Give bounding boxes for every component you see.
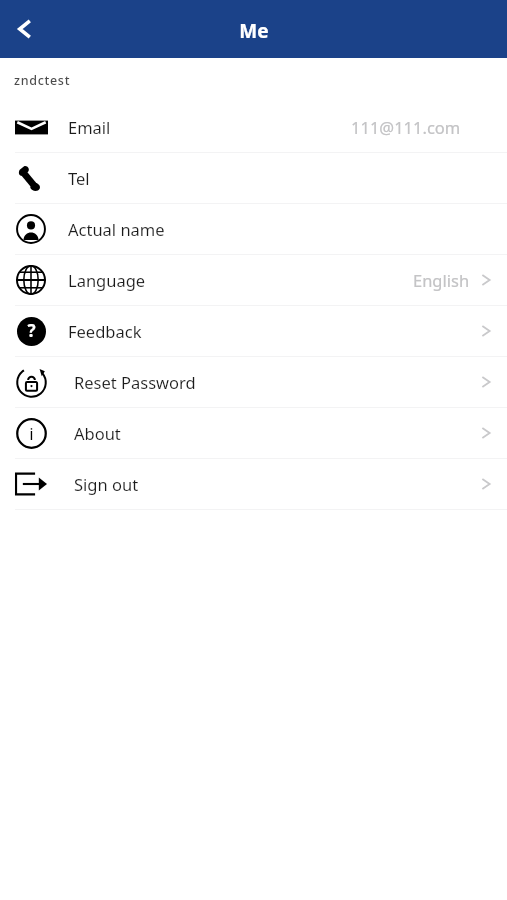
staticText: Sign out — [74, 473, 139, 495]
staticText: Tel — [68, 167, 90, 189]
staticText: Me — [239, 18, 269, 44]
button[interactable]: Tel — [0, 153, 507, 203]
staticText: 111@111.com — [351, 116, 461, 138]
button[interactable]: Sign out — [0, 459, 507, 509]
staticText: Language — [68, 269, 146, 291]
staticText: Reset Password — [74, 371, 196, 393]
staticText: Actual name — [68, 218, 165, 240]
button[interactable]: Back — [0, 4, 50, 54]
staticText: zndctest — [14, 72, 71, 89]
staticText: Feedback — [68, 320, 142, 342]
button[interactable]: Email — [0, 102, 507, 152]
staticText: English — [413, 269, 470, 291]
button[interactable]: Actual name — [0, 204, 507, 254]
staticText: i — [29, 422, 34, 445]
button[interactable]: i — [0, 408, 507, 458]
staticText: About — [74, 422, 121, 444]
button[interactable]: Language — [0, 255, 507, 305]
staticText: ? — [27, 319, 36, 342]
button[interactable]: Reset Password — [0, 357, 507, 407]
button[interactable]: ? — [0, 306, 507, 356]
staticText: Email — [68, 116, 111, 138]
